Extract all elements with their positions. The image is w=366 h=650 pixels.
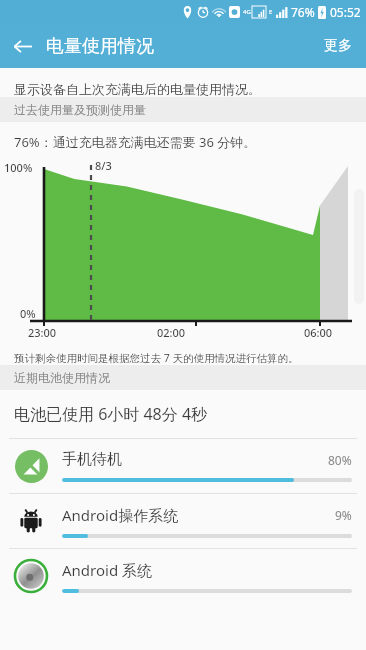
staticText: Android操作系统 (62, 505, 335, 525)
staticText: 4G (243, 8, 251, 16)
button[interactable]: 手机待机 (0, 439, 366, 493)
staticText: 02:00 (157, 325, 186, 340)
staticText: 80% (328, 452, 352, 468)
button[interactable]: Android操作系统 (0, 494, 366, 548)
staticText: 9% (335, 507, 352, 523)
staticText: 06:00 (304, 325, 333, 340)
staticText: 过去使用量及预测使用量 (14, 102, 146, 117)
staticText: 23:00 (28, 325, 57, 340)
staticText: E (269, 8, 273, 16)
staticText: 100% (4, 160, 33, 175)
button[interactable]: Android 系统 (0, 549, 366, 603)
staticText: 近期电池使用情况 (14, 370, 110, 385)
staticText: 电量使用情况 (46, 35, 154, 58)
staticText: Android 系统 (62, 560, 352, 580)
staticText: 76%：通过充电器充满电还需要 36 分钟。 (14, 133, 257, 151)
staticText: 76% (291, 4, 315, 20)
staticText: 8/3 (95, 158, 112, 173)
button[interactable]: 返回 (0, 24, 44, 68)
staticText: 0% (20, 306, 36, 321)
staticText: 更多 (324, 37, 352, 55)
staticText: 预计剩余使用时间是根据您过去 7 天的使用情况进行估算的。 (14, 351, 299, 365)
staticText: 05:52 (330, 4, 361, 20)
button[interactable]: 更多 (310, 27, 366, 65)
staticText: 手机待机 (62, 450, 328, 469)
staticText: 显示设备自上次充满电后的电量使用情况。 (14, 81, 261, 97)
staticText: 电池已使用 6小时 48分 4秒 (14, 403, 208, 425)
